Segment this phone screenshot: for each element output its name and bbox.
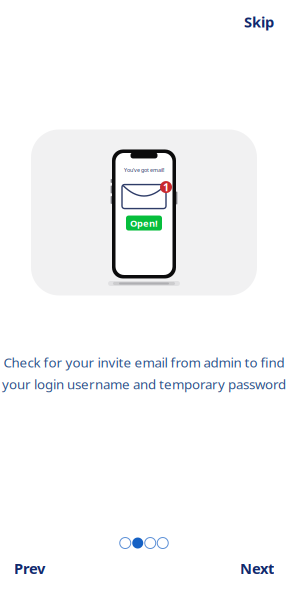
staticText: your login username and temporary passwo…: [2, 375, 286, 393]
button[interactable]: Prev: [6, 552, 53, 584]
staticText: Open!: [130, 217, 158, 229]
staticText: You've got email!: [124, 166, 164, 174]
staticText: Next: [240, 558, 274, 578]
button[interactable]: Page 2, current page: [132, 537, 143, 548]
staticText: Skip: [244, 12, 274, 31]
button[interactable]: Page 1: [120, 537, 131, 548]
button[interactable]: Skip: [236, 6, 282, 37]
button[interactable]: Page 4: [157, 537, 168, 548]
staticText: Prev: [14, 558, 45, 578]
button[interactable]: Page 3: [145, 537, 156, 548]
button[interactable]: Next: [232, 552, 282, 584]
staticText: Check for your invite email from admin t…: [3, 353, 284, 371]
staticText: 1: [163, 180, 169, 194]
